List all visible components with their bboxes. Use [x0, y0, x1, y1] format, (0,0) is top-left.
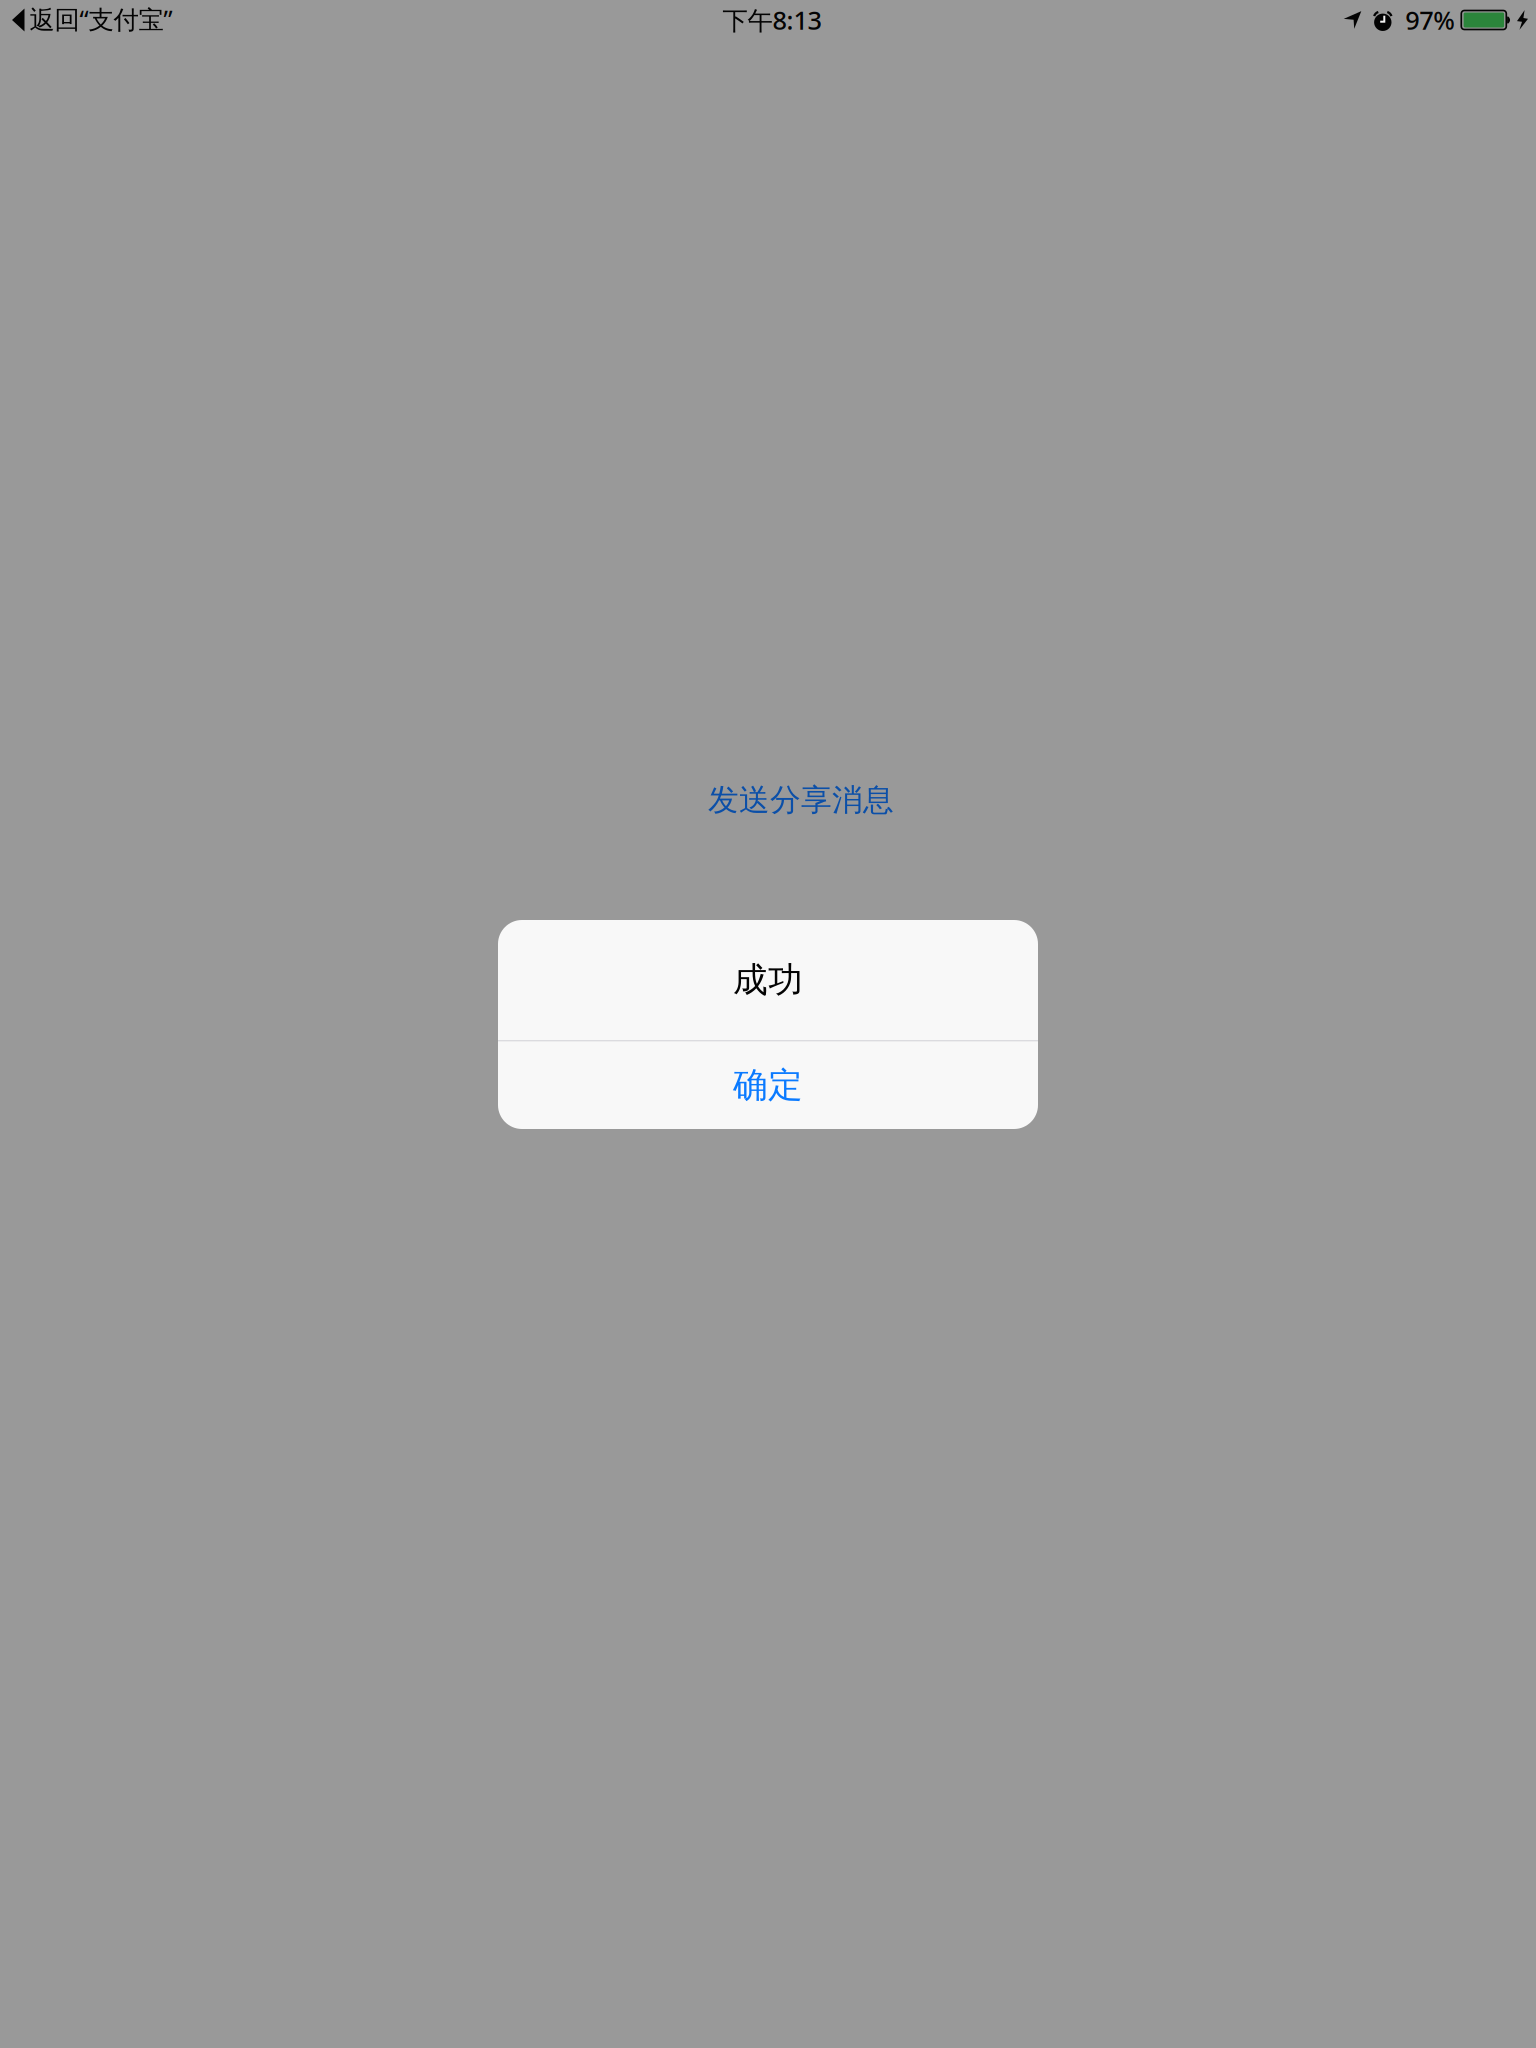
staticText: 确定 — [733, 1064, 803, 1106]
staticText: 发送分享消息 — [708, 781, 894, 819]
button[interactable]: 确定 — [498, 1041, 1038, 1129]
button[interactable]: 发送分享消息 — [708, 780, 894, 820]
staticText: 97% — [1405, 3, 1455, 37]
staticText: 成功 — [733, 959, 803, 1001]
staticText: 下午8:13 — [722, 3, 821, 37]
button[interactable]: 返回支付宝 — [0, 0, 182, 40]
staticText: 返回“支付宝” — [29, 2, 172, 36]
